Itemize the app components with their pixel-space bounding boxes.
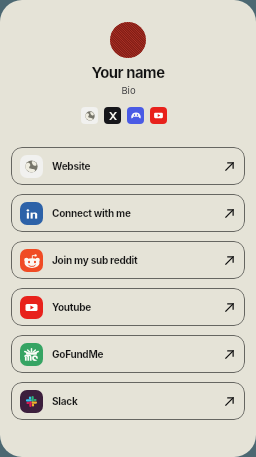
staticText: Your name bbox=[91, 64, 165, 82]
button[interactable]: Youtube bbox=[11, 288, 245, 326]
button[interactable]: Profile picture bbox=[110, 22, 146, 58]
staticText: Connect with me bbox=[52, 207, 131, 219]
button[interactable]: Website bbox=[11, 147, 245, 185]
button[interactable]: Join my sub reddit bbox=[11, 241, 245, 279]
button[interactable]: YouTube bbox=[150, 107, 167, 124]
staticText: Slack bbox=[52, 395, 78, 407]
staticText: GoFundMe bbox=[52, 348, 104, 360]
button[interactable]: Discord bbox=[127, 107, 144, 124]
staticText: Bio bbox=[121, 85, 136, 96]
staticText: Website bbox=[52, 160, 91, 172]
button[interactable]: Slack bbox=[11, 382, 245, 420]
button[interactable]: Connect with me bbox=[11, 194, 245, 232]
staticText: Join my sub reddit bbox=[52, 254, 138, 266]
button[interactable]: Website bbox=[81, 107, 98, 124]
button[interactable]: GoFundMe bbox=[11, 335, 245, 373]
button[interactable]: X bbox=[104, 107, 121, 124]
staticText: Youtube bbox=[52, 301, 91, 313]
